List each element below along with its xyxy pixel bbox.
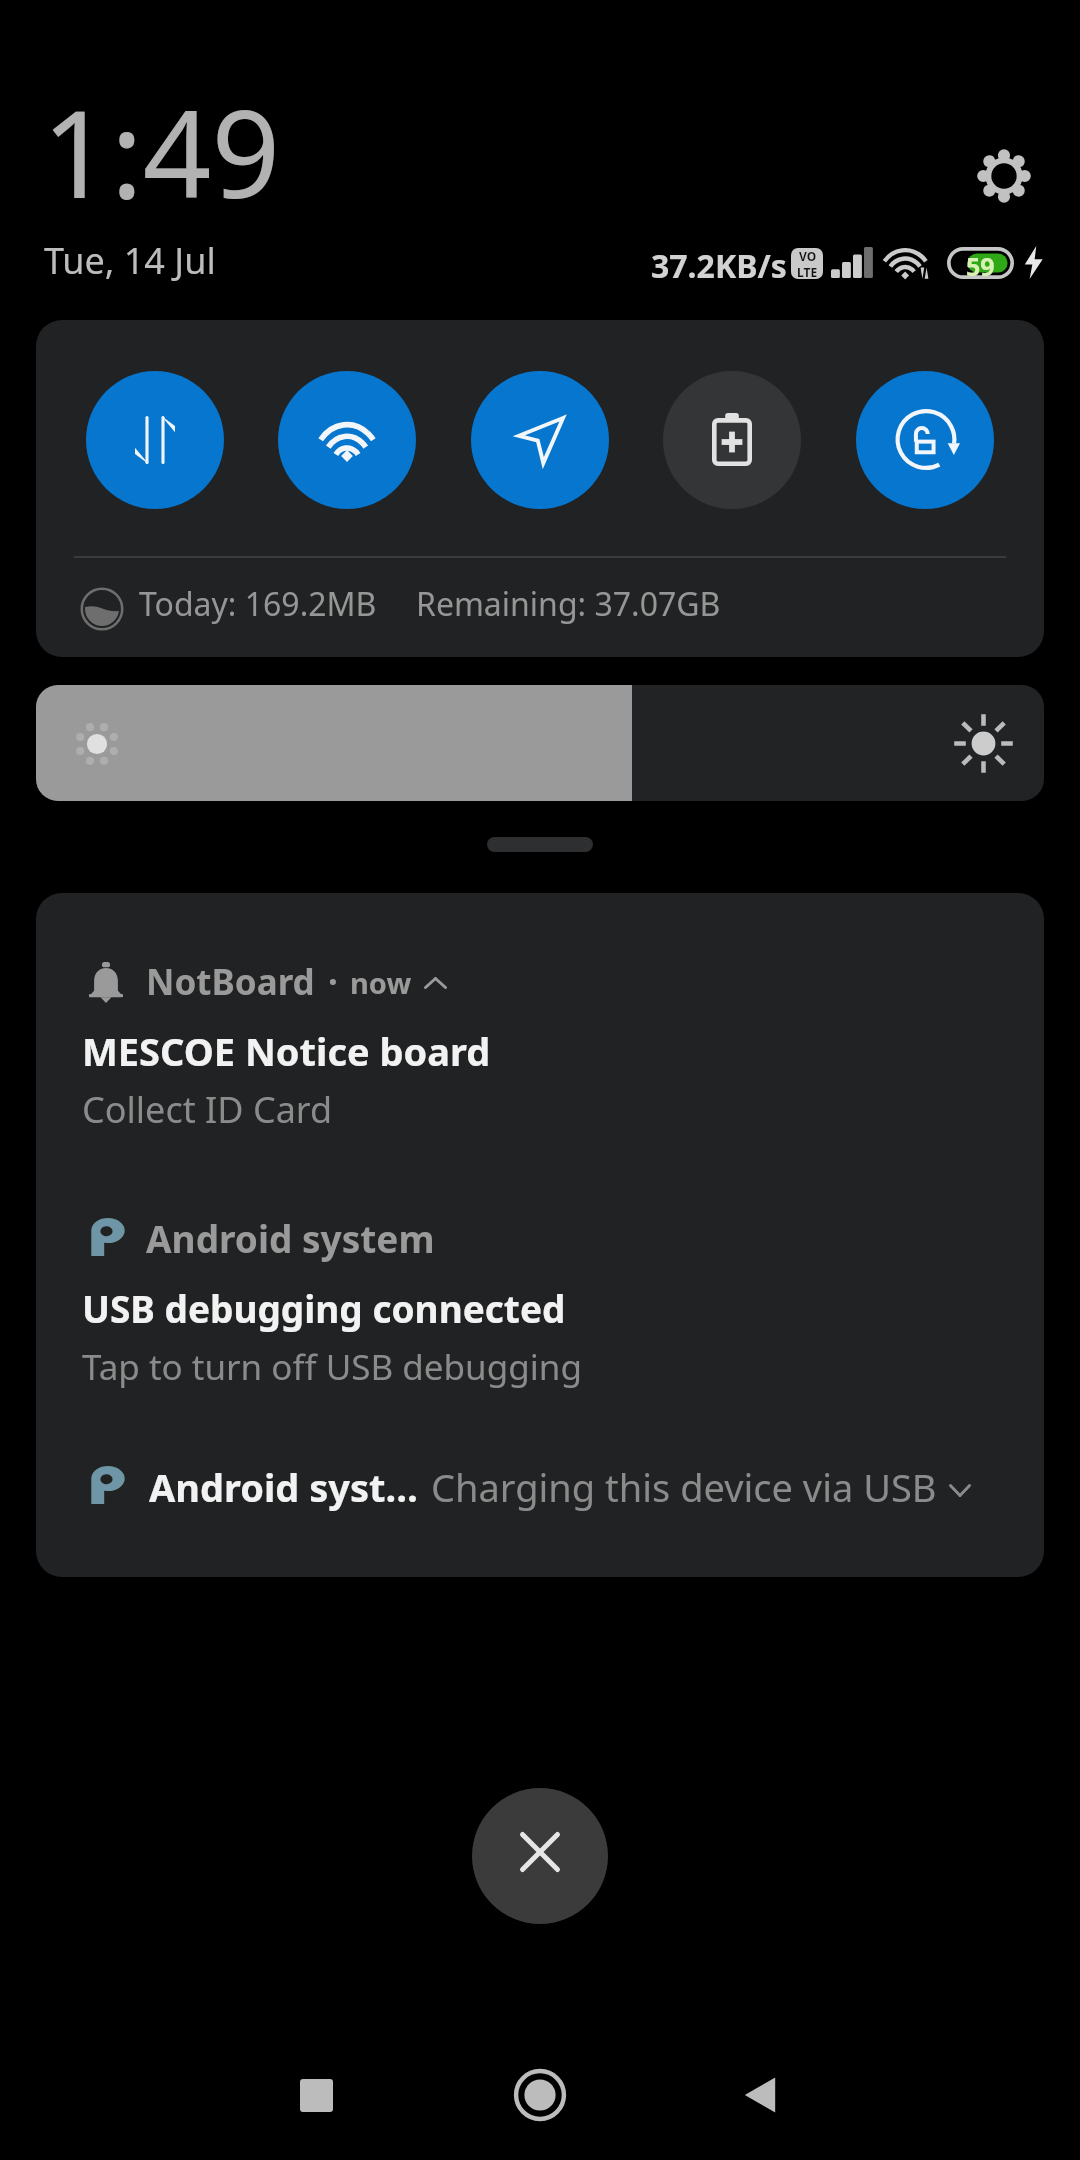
staticText: Android system <box>146 1213 435 1263</box>
staticText: 59 <box>966 249 995 281</box>
staticText: Android syst… <box>149 1461 419 1513</box>
button[interactable]: Android syst… <box>36 1448 1044 1577</box>
button[interactable]: Home <box>480 2035 600 2155</box>
button[interactable]: Back <box>700 2035 820 2155</box>
staticText: Tue, 14 Jul <box>44 236 216 285</box>
staticText: Tap to turn off USB debugging <box>82 1343 582 1391</box>
staticText: NotBoard <box>146 958 315 1006</box>
staticText: now <box>350 963 412 1002</box>
button[interactable]: Location <box>471 371 609 509</box>
staticText: MESCOE Notice board <box>82 1025 491 1077</box>
button[interactable]: Wi-Fi <box>278 371 416 509</box>
staticText: 37.2KB/s <box>651 244 787 288</box>
button[interactable]: Settings <box>959 131 1049 221</box>
staticText: Today: 169.2MB <box>139 582 377 626</box>
button[interactable]: NotBoard <box>36 893 1044 1158</box>
button[interactable]: Auto-rotate <box>856 371 994 509</box>
button[interactable]: Recents <box>256 2035 376 2155</box>
staticText: Collect ID Card <box>82 1085 333 1134</box>
staticText: Charging this device via USB <box>431 1461 937 1513</box>
staticText: 1:49 <box>42 70 281 233</box>
staticText: · <box>328 958 338 1006</box>
button[interactable]: Brightness <box>36 685 1044 801</box>
staticText: VO <box>799 248 817 264</box>
button[interactable]: Android system <box>36 1158 1044 1448</box>
button[interactable]: Battery saver <box>663 371 801 509</box>
button[interactable]: Clear all notifications <box>472 1788 608 1924</box>
button[interactable]: Mobile data <box>86 371 224 509</box>
staticText: LTE <box>797 264 818 279</box>
staticText: USB debugging connected <box>82 1283 566 1333</box>
staticText: Remaining: 37.07GB <box>416 582 721 626</box>
